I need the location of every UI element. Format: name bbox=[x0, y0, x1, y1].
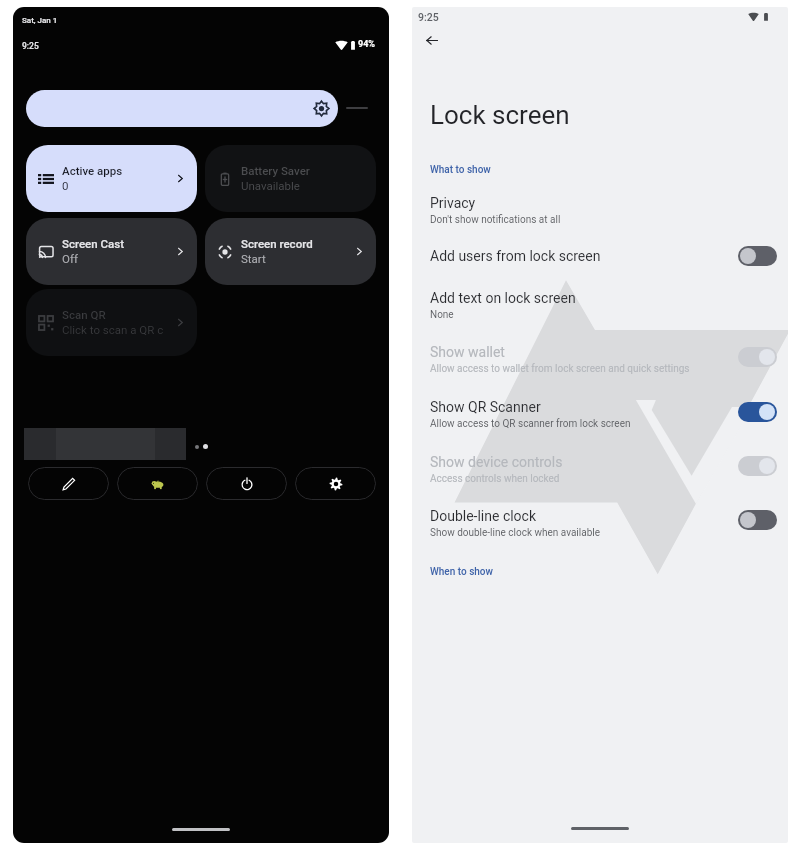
staticText: Add users from lock screen bbox=[430, 248, 601, 264]
staticText: Access controls when locked bbox=[430, 473, 560, 485]
button[interactable]: Double-line clock bbox=[738, 510, 777, 530]
staticText: What to show bbox=[430, 164, 491, 176]
button[interactable]: Active apps bbox=[26, 145, 197, 212]
staticText: Show QR Scanner bbox=[430, 399, 541, 415]
staticText: Screen Cast bbox=[62, 237, 125, 250]
staticText: Lock screen bbox=[430, 100, 570, 130]
staticText: Scan QR bbox=[62, 308, 106, 321]
button[interactable]: Add users from lock screen bbox=[412, 242, 788, 268]
button[interactable]: Double-line clock bbox=[412, 502, 788, 542]
button[interactable]: Screen record bbox=[205, 218, 376, 285]
staticText: Show double-line clock when available bbox=[430, 527, 600, 539]
staticText: Active apps bbox=[62, 164, 123, 177]
button[interactable]: Add text on lock screen bbox=[412, 284, 788, 324]
staticText: Show device controls bbox=[430, 454, 563, 470]
staticText: Click to scan a QR c bbox=[62, 323, 164, 336]
button[interactable]: Show device controls bbox=[412, 448, 788, 488]
staticText: 9:25 bbox=[22, 41, 39, 51]
staticText: 0 bbox=[62, 179, 69, 192]
staticText: Add text on lock screen bbox=[430, 290, 576, 306]
button[interactable]: Edit tiles bbox=[28, 467, 109, 500]
staticText: Privacy bbox=[430, 195, 476, 211]
staticText: Unavailable bbox=[241, 179, 300, 192]
button[interactable]: Power bbox=[206, 467, 287, 500]
button[interactable]: Battery Saver bbox=[205, 145, 376, 212]
button[interactable]: Privacy bbox=[412, 189, 788, 229]
staticText: 94% bbox=[358, 39, 375, 50]
staticText: Battery Saver bbox=[241, 164, 310, 177]
staticText: Start bbox=[241, 252, 266, 265]
staticText: 9:25 bbox=[418, 11, 439, 23]
button[interactable]: Show QR Scanner bbox=[412, 393, 788, 433]
staticText: Off bbox=[62, 252, 78, 265]
staticText: Don't show notifications at all bbox=[430, 214, 561, 226]
button[interactable]: Brightness bbox=[26, 90, 338, 127]
button[interactable]: Show wallet bbox=[412, 338, 788, 378]
staticText: Show wallet bbox=[430, 344, 505, 360]
staticText: Screen record bbox=[241, 237, 313, 250]
button[interactable]: Battery savings bbox=[117, 467, 198, 500]
staticText: Sat, Jan 1 bbox=[22, 16, 58, 25]
button[interactable]: Settings bbox=[295, 467, 376, 500]
button[interactable]: Show QR Scanner bbox=[738, 402, 777, 422]
staticText: Allow access to wallet from lock screen … bbox=[430, 363, 690, 375]
staticText: When to show bbox=[430, 566, 493, 578]
button[interactable]: Show device controls bbox=[738, 456, 777, 476]
button[interactable]: Add users from lock screen bbox=[738, 246, 777, 266]
staticText: Allow access to QR scanner from lock scr… bbox=[430, 418, 631, 430]
staticText: None bbox=[430, 309, 454, 321]
button[interactable]: Scan QR bbox=[26, 289, 197, 356]
button[interactable]: Show wallet bbox=[738, 347, 777, 367]
button[interactable]: Screen Cast bbox=[26, 218, 197, 285]
button[interactable]: Back bbox=[414, 22, 450, 58]
staticText: Double-line clock bbox=[430, 508, 537, 524]
